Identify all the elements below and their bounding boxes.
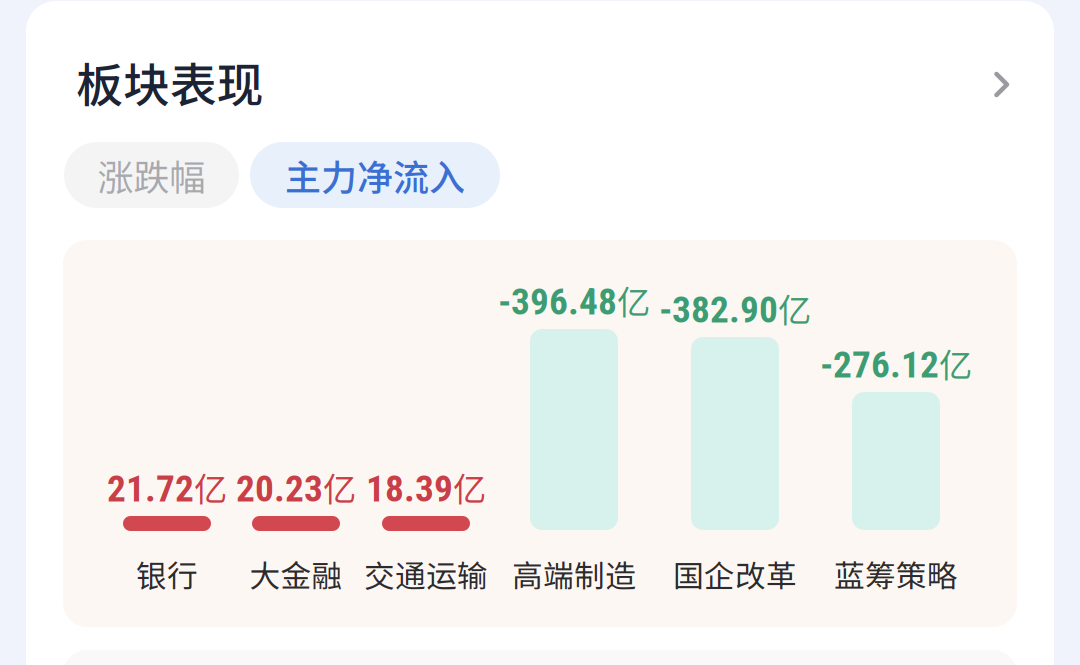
button[interactable]: 涨跌幅 [64, 142, 239, 208]
staticText: 亿 [194, 463, 227, 511]
staticText: 亿 [453, 463, 486, 511]
staticText: 20.23 [236, 467, 323, 511]
button[interactable]: 板块表现 [26, 28, 1054, 136]
staticText: -382.90 [659, 288, 778, 332]
staticText: 板块表现 [76, 48, 264, 116]
staticText: 大金融 [249, 552, 342, 596]
staticText: -396.48 [498, 280, 617, 324]
staticText: -276.12 [820, 343, 939, 387]
staticText: 主力净流入 [285, 149, 465, 201]
staticText: 蓝筹策略 [834, 552, 958, 596]
staticText: 18.39 [366, 467, 453, 511]
staticText: 亿 [617, 276, 650, 324]
button[interactable]: 主力净流入 [250, 142, 500, 208]
staticText: 亿 [323, 463, 356, 511]
staticText: 亿 [778, 284, 811, 332]
staticText: 亿 [939, 339, 972, 387]
staticText: 21.72 [107, 467, 194, 511]
staticText: 国企改革 [673, 552, 797, 596]
staticText: 涨跌幅 [97, 149, 205, 201]
staticText: 高端制造 [512, 552, 636, 596]
staticText: 银行 [136, 552, 198, 596]
staticText: 交通运输 [364, 552, 488, 596]
